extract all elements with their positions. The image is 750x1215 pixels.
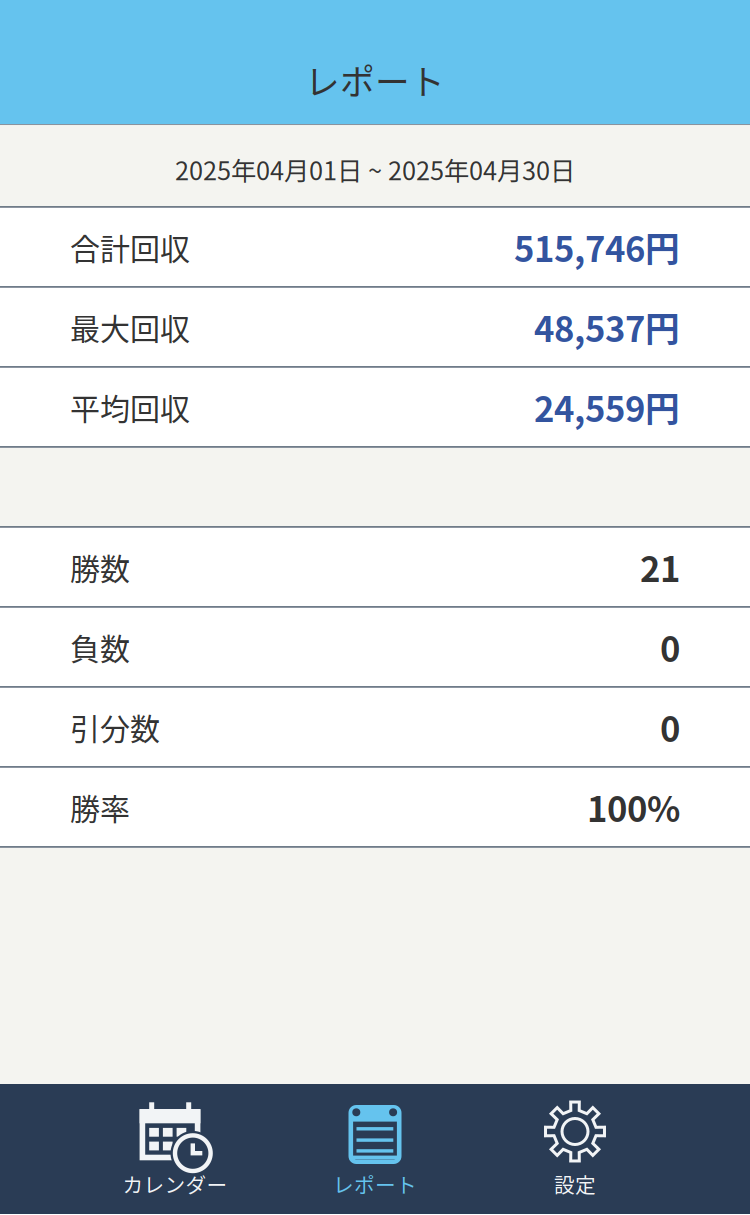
staticText: 21 bbox=[640, 542, 680, 592]
staticText: 勝率 bbox=[70, 785, 130, 829]
button[interactable]: 勝数 bbox=[0, 528, 750, 606]
staticText: 合計回収 bbox=[70, 225, 190, 269]
button[interactable]: 最大回収 bbox=[0, 288, 750, 366]
button[interactable]: 引分数 bbox=[0, 688, 750, 766]
staticText: 100% bbox=[587, 782, 680, 832]
staticText: 勝数 bbox=[70, 545, 130, 589]
staticText: 引分数 bbox=[70, 705, 160, 749]
button[interactable]: カレンダー bbox=[75, 1084, 275, 1214]
staticText: 0 bbox=[660, 702, 680, 752]
button[interactable]: レポート bbox=[275, 1084, 475, 1214]
staticText: レポート bbox=[333, 1169, 417, 1199]
staticText: 最大回収 bbox=[70, 305, 190, 349]
button[interactable]: 勝率 bbox=[0, 768, 750, 846]
staticText: 515,746円 bbox=[514, 222, 680, 272]
button[interactable]: 合計回収 bbox=[0, 208, 750, 286]
button[interactable]: 設定 bbox=[475, 1084, 675, 1214]
staticText: 負数 bbox=[70, 625, 130, 669]
button[interactable]: 平均回収 bbox=[0, 368, 750, 446]
button[interactable]: 負数 bbox=[0, 608, 750, 686]
staticText: 設定 bbox=[554, 1169, 596, 1199]
staticText: 0 bbox=[660, 622, 680, 672]
staticText: 24,559円 bbox=[534, 382, 680, 432]
staticText: レポート bbox=[305, 55, 445, 105]
staticText: 48,537円 bbox=[534, 302, 680, 352]
staticText: 2025年04月01日 ~ 2025年04月30日 bbox=[175, 151, 575, 188]
staticText: 平均回収 bbox=[70, 385, 190, 429]
staticText: カレンダー bbox=[122, 1169, 227, 1199]
